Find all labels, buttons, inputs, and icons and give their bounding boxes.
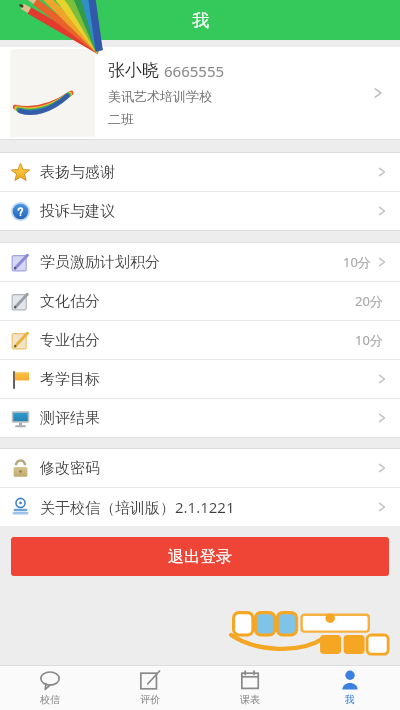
staticText: 10分 [343,253,371,271]
staticText: 文化估分 [40,292,100,311]
button[interactable]: 评价 [100,665,200,710]
button[interactable]: 校信 [0,665,100,710]
button[interactable]: 学员激励计划积分 [0,243,400,281]
staticText: 修改密码 [40,459,100,478]
button[interactable]: 投诉与建议 [0,192,400,230]
button[interactable]: 我 [300,665,400,710]
staticText: 评价 [140,693,160,706]
button[interactable]: 文化估分 [0,282,400,320]
button[interactable]: 张小晓 [0,47,400,139]
button[interactable]: 修改密码 [0,449,400,487]
button[interactable]: 专业估分 [0,321,400,359]
button[interactable]: 考学目标 [0,360,400,398]
staticText: 学员激励计划积分 [40,253,160,272]
button[interactable]: 课表 [200,665,300,710]
staticText: 退出登录 [168,547,232,567]
staticText: 关于校信（培训版）2.1.1221 [40,497,235,517]
staticText: 我 [192,10,209,31]
staticText: 二班 [108,111,134,127]
staticText: 校信 [40,693,60,706]
staticText: 我 [345,693,355,706]
button[interactable]: 表扬与感谢 [0,153,400,191]
staticText: 投诉与建议 [40,202,115,221]
staticText: 专业估分 [40,331,100,350]
staticText: 美讯艺术培训学校 [108,88,212,104]
button[interactable]: 测评结果 [0,399,400,437]
staticText: 表扬与感谢 [40,163,115,182]
staticText: 考学目标 [40,370,100,389]
staticText: 20分 [355,292,383,310]
staticText: 测评结果 [40,409,100,428]
staticText: 6665555 [164,61,225,81]
staticText: 张小晓 [108,60,159,81]
button[interactable]: 退出登录 [11,537,389,576]
staticText: 课表 [240,693,260,706]
staticText: 10分 [355,331,383,349]
button[interactable]: 关于校信（培训版）2.1.1221 [0,488,400,526]
